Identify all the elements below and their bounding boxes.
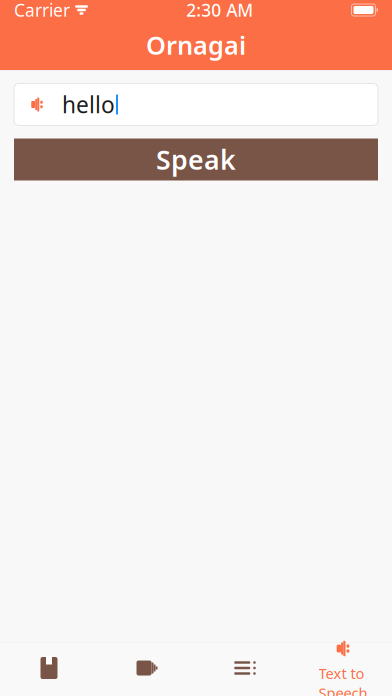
staticText: 2:30 AM — [186, 0, 253, 21]
button[interactable]: Speak — [14, 138, 378, 180]
button[interactable]: History — [196, 644, 294, 694]
button[interactable]: Dictionary — [0, 644, 98, 694]
staticText: hello — [62, 89, 115, 119]
button[interactable]: Text to Speech — [294, 644, 392, 694]
button[interactable]: Tags — [98, 644, 196, 694]
staticText: Speak — [156, 142, 236, 177]
button[interactable]: Play pronunciation — [26, 93, 48, 115]
staticText: Text to Speech — [318, 663, 367, 696]
staticText: Ornagai — [146, 28, 246, 62]
staticText: Carrier — [14, 0, 70, 21]
